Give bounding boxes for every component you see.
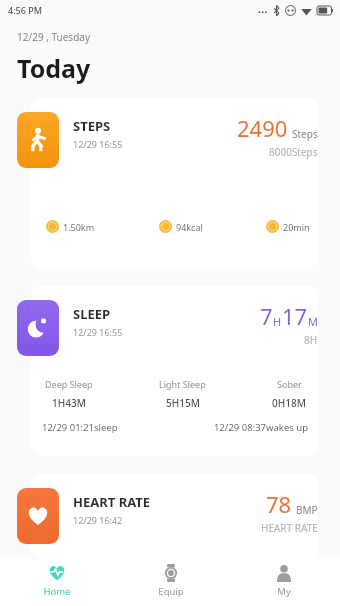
- staticText: Today: [17, 51, 91, 85]
- staticText: 7: [260, 301, 273, 331]
- staticText: 8H: [304, 333, 318, 347]
- button[interactable]: [31, 286, 318, 456]
- staticText: Home: [43, 585, 71, 598]
- staticText: 1H43M: [52, 396, 86, 410]
- staticText: STEPS: [73, 117, 111, 135]
- button[interactable]: My: [227, 559, 340, 606]
- staticText: 20min: [283, 221, 310, 233]
- staticText: 8000Steps: [269, 145, 318, 159]
- staticText: 2490: [237, 113, 288, 143]
- staticText: 12/29 16:55: [73, 138, 123, 150]
- staticText: 5H15M: [166, 396, 200, 410]
- staticText: HEART RATE: [261, 521, 318, 535]
- staticText: BMP: [296, 503, 318, 517]
- staticText: 12/29 , Tuesday: [17, 30, 91, 44]
- button[interactable]: Equip: [114, 559, 227, 606]
- staticText: 12/29 16:42: [73, 514, 123, 526]
- button[interactable]: Heart rate: [17, 488, 59, 544]
- staticText: 94kcal: [176, 221, 203, 233]
- staticText: 12/29 08:37wakes up: [214, 421, 308, 434]
- staticText: M: [308, 314, 318, 329]
- staticText: SLEEP: [73, 305, 111, 323]
- button[interactable]: Sleep: [17, 300, 59, 356]
- button[interactable]: Steps: [17, 112, 59, 168]
- staticText: 12/29 16:55: [73, 326, 123, 338]
- staticText: 0H18M: [272, 396, 306, 410]
- staticText: 4:56 PM: [8, 4, 42, 16]
- staticText: H: [273, 314, 282, 329]
- staticText: Steps: [292, 127, 318, 141]
- button[interactable]: [31, 474, 318, 559]
- button[interactable]: Home: [0, 559, 114, 606]
- staticText: Sober: [277, 378, 302, 390]
- staticText: My: [277, 585, 291, 598]
- staticText: Equip: [158, 585, 184, 598]
- staticText: 78: [266, 489, 292, 519]
- button[interactable]: [31, 98, 318, 268]
- staticText: 1.50km: [63, 221, 95, 233]
- staticText: 12/29 01:21sleep: [42, 421, 118, 434]
- staticText: Deep Sleep: [45, 378, 93, 390]
- staticText: 17: [282, 301, 308, 331]
- staticText: Light Sleep: [159, 378, 206, 390]
- staticText: HEART RATE: [73, 493, 151, 511]
